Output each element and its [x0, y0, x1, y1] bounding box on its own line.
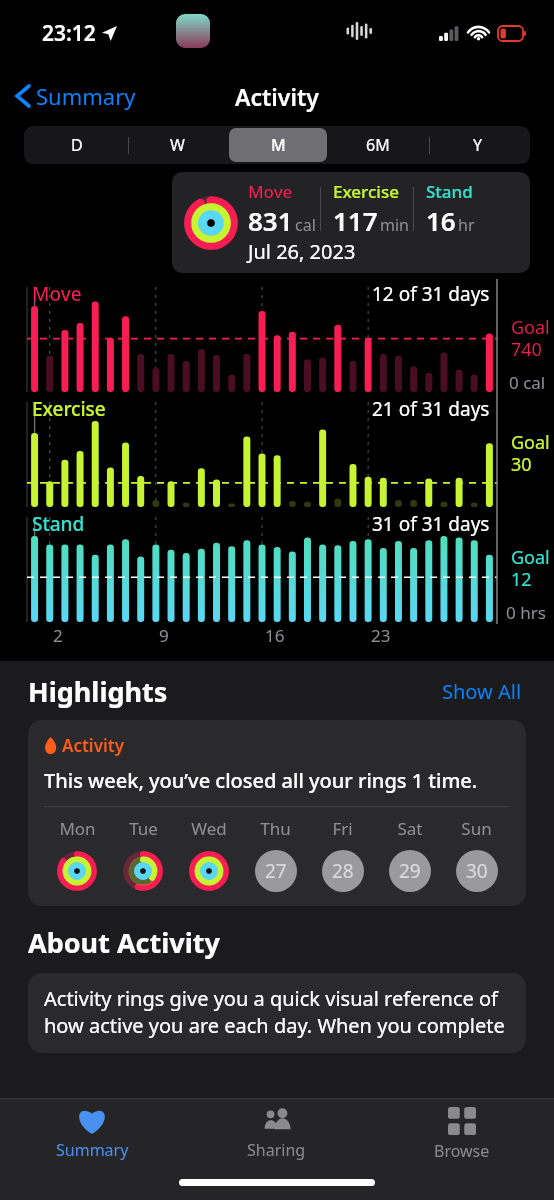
- button[interactable]: 6M: [329, 128, 427, 162]
- button[interactable]: Y: [429, 128, 527, 162]
- staticText: Tue: [129, 817, 158, 840]
- button[interactable]: Summary: [0, 1099, 184, 1165]
- staticText: D: [71, 134, 83, 156]
- staticText: 12 of 31 days: [372, 281, 490, 307]
- staticText: Jul 26, 2023: [248, 238, 356, 265]
- staticText: 16: [265, 624, 285, 647]
- staticText: Goal 12: [511, 545, 550, 592]
- staticText: Browse: [434, 1140, 490, 1162]
- staticText: 21 of 31 days: [372, 396, 490, 422]
- button[interactable]: Summary: [12, 77, 140, 115]
- staticText: cal: [295, 214, 316, 236]
- staticText: 23:12: [42, 19, 96, 48]
- staticText: 30: [466, 858, 488, 884]
- staticText: Goal 30: [511, 430, 550, 477]
- staticText: Y: [473, 134, 483, 156]
- staticText: 29: [399, 858, 421, 884]
- staticText: 27: [265, 858, 287, 884]
- staticText: Summary: [56, 1139, 129, 1161]
- staticText: Goal 740: [511, 315, 550, 362]
- staticText: Activity rings give you a quick visual r…: [44, 985, 510, 1041]
- staticText: Move: [32, 281, 82, 307]
- staticText: Show All: [442, 678, 522, 705]
- staticText: Mon: [59, 817, 96, 840]
- staticText: Activity: [62, 734, 124, 757]
- staticText: Thu: [260, 817, 291, 840]
- staticText: Exercise: [32, 396, 106, 422]
- staticText: Sun: [461, 817, 492, 840]
- staticText: 28: [332, 858, 354, 884]
- button[interactable]: D: [27, 128, 126, 162]
- staticText: 0 hrs: [506, 601, 546, 624]
- button[interactable]: Activity: [28, 720, 526, 906]
- button[interactable]: Sharing: [184, 1099, 369, 1165]
- staticText: 117: [333, 203, 378, 238]
- staticText: Summary: [36, 81, 136, 111]
- button[interactable]: Browse: [369, 1099, 554, 1165]
- staticText: Sat: [397, 817, 423, 840]
- staticText: About Activity: [28, 924, 220, 961]
- staticText: 6M: [366, 134, 390, 156]
- staticText: Wed: [191, 817, 227, 840]
- staticText: W: [170, 134, 185, 156]
- staticText: Highlights: [28, 673, 168, 710]
- button[interactable]: Move: [172, 172, 530, 273]
- staticText: Sharing: [247, 1139, 306, 1161]
- staticText: Exercise: [333, 180, 399, 203]
- staticText: 2: [53, 624, 63, 647]
- staticText: This week, you’ve closed all your rings …: [44, 767, 478, 794]
- staticText: 0 cal: [509, 371, 546, 394]
- staticText: 831: [248, 203, 293, 238]
- staticText: 23: [371, 624, 391, 647]
- staticText: M: [271, 134, 286, 156]
- staticText: Activity: [235, 81, 319, 112]
- staticText: min: [380, 214, 409, 236]
- staticText: hr: [458, 214, 475, 236]
- staticText: 31 of 31 days: [372, 511, 490, 537]
- button[interactable]: Activity rings give you a quick visual r…: [28, 973, 526, 1053]
- staticText: Move: [248, 180, 293, 203]
- staticText: Stand: [426, 180, 473, 203]
- staticText: Fri: [332, 817, 353, 840]
- button[interactable]: Show All: [438, 674, 526, 709]
- staticText: 9: [159, 624, 169, 647]
- button[interactable]: W: [128, 128, 227, 162]
- staticText: Stand: [32, 511, 85, 537]
- button[interactable]: M: [229, 128, 327, 162]
- staticText: 16: [426, 203, 456, 238]
